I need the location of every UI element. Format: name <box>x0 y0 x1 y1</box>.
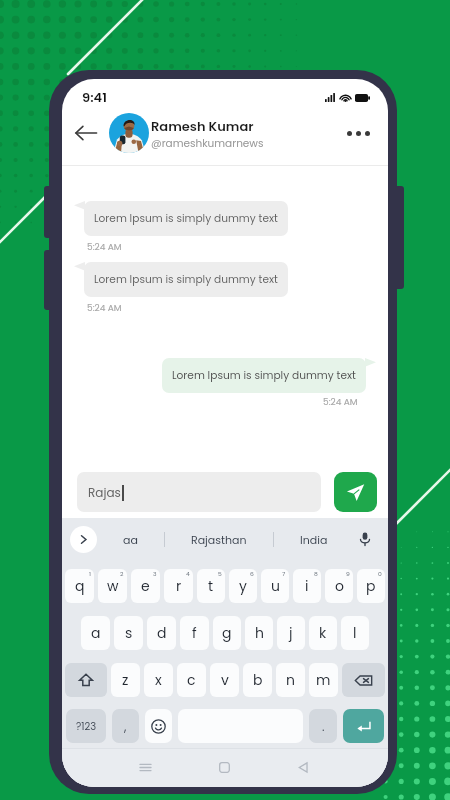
button[interactable]: Voice input <box>354 528 376 550</box>
button[interactable]: Backspace <box>342 663 385 697</box>
button[interactable]: x <box>144 663 173 697</box>
staticText: p <box>366 576 376 596</box>
button[interactable]: t <box>197 569 225 603</box>
staticText: y <box>239 576 247 596</box>
button[interactable]: More options <box>343 118 373 148</box>
staticText: r <box>176 576 182 596</box>
staticText: 9:41 <box>82 88 107 106</box>
staticText: a <box>91 623 101 643</box>
button[interactable]: f <box>180 616 209 650</box>
staticText: d <box>157 623 167 643</box>
button[interactable]: u <box>261 569 289 603</box>
button[interactable]: g <box>213 616 241 650</box>
staticText: 4 <box>186 570 190 578</box>
staticText: n <box>286 670 295 690</box>
staticText: Lorem Ipsum is simply dummy text <box>172 368 356 383</box>
button[interactable]: Shift <box>65 663 107 697</box>
staticText: e <box>141 576 150 596</box>
staticText: @rameshkumarnews <box>151 136 264 151</box>
button[interactable]: e <box>131 569 160 603</box>
button[interactable]: ?123 <box>66 709 106 743</box>
staticText: h <box>255 623 264 643</box>
button[interactable]: h <box>245 616 273 650</box>
staticText: u <box>271 576 280 596</box>
staticText: 0 <box>378 570 382 578</box>
staticText: 5:24 AM <box>87 241 122 254</box>
staticText: w <box>107 576 119 596</box>
button[interactable]: Back <box>71 118 101 148</box>
staticText: k <box>319 623 327 643</box>
button[interactable]: c <box>177 663 206 697</box>
staticText: Ramesh Kumar <box>151 117 254 135</box>
button[interactable]: i <box>293 569 321 603</box>
staticText: Rajasthan <box>191 532 247 547</box>
button[interactable]: Lorem Ipsum is simply dummy text <box>84 262 288 297</box>
button[interactable]: w <box>98 569 127 603</box>
button[interactable]: a <box>81 616 110 650</box>
staticText: Lorem Ipsum is simply dummy text <box>94 211 278 226</box>
staticText: g <box>222 623 232 643</box>
button[interactable]: , <box>112 709 139 743</box>
button[interactable]: n <box>276 663 305 697</box>
button[interactable]: y <box>229 569 257 603</box>
staticText: f <box>192 623 197 643</box>
button[interactable]: aa <box>117 528 144 551</box>
staticText: v <box>221 670 229 690</box>
staticText: 8 <box>314 570 318 578</box>
button[interactable]: India <box>294 528 334 551</box>
staticText: ?123 <box>76 719 97 733</box>
button[interactable]: j <box>277 616 305 650</box>
button[interactable]: Expand suggestions <box>70 526 97 553</box>
staticText: x <box>155 670 162 690</box>
staticText: Lorem Ipsum is simply dummy text <box>94 272 278 287</box>
button[interactable]: z <box>111 663 140 697</box>
staticText: aa <box>123 532 138 547</box>
staticText: India <box>300 532 328 547</box>
staticText: l <box>353 623 357 643</box>
button[interactable]: q <box>65 569 94 603</box>
button[interactable]: r <box>164 569 193 603</box>
staticText: s <box>125 623 133 643</box>
staticText: j <box>289 623 293 643</box>
button[interactable]: d <box>147 616 176 650</box>
button[interactable]: Rajasthan <box>185 528 253 551</box>
staticText: 9 <box>346 570 350 578</box>
button[interactable]: m <box>309 663 338 697</box>
button[interactable]: s <box>114 616 143 650</box>
staticText: c <box>187 670 196 690</box>
button[interactable]: b <box>243 663 272 697</box>
staticText: Rajas <box>88 484 121 501</box>
staticText: t <box>208 576 214 596</box>
staticText: 5 <box>218 570 222 578</box>
staticText: i <box>305 576 309 596</box>
staticText: b <box>253 670 263 690</box>
button[interactable]: Enter <box>343 709 384 743</box>
button[interactable]: k <box>309 616 337 650</box>
staticText: o <box>335 576 344 596</box>
button[interactable]: Emoji <box>145 709 172 743</box>
staticText: z <box>122 670 129 690</box>
staticText: 7 <box>282 570 286 578</box>
staticText: , <box>124 718 127 735</box>
button[interactable]: Home <box>211 754 237 780</box>
button[interactable]: l <box>341 616 369 650</box>
button[interactable]: Send <box>334 472 377 512</box>
button[interactable]: Rajas <box>77 472 321 512</box>
staticText: 5:24 AM <box>87 302 122 315</box>
staticText: 3 <box>153 570 157 578</box>
staticText: 5:24 AM <box>323 396 358 409</box>
button[interactable]: Lorem Ipsum is simply dummy text <box>84 201 288 236</box>
staticText: 2 <box>120 570 124 578</box>
staticText: . <box>322 718 325 735</box>
button[interactable]: Back <box>290 754 316 780</box>
staticText: 6 <box>250 570 254 578</box>
staticText: q <box>75 576 85 596</box>
staticText: m <box>316 670 331 690</box>
button[interactable]: o <box>325 569 353 603</box>
button[interactable]: Lorem Ipsum is simply dummy text <box>162 358 366 393</box>
button[interactable]: v <box>210 663 239 697</box>
button[interactable]: . <box>309 709 337 743</box>
button[interactable]: p <box>357 569 385 603</box>
button[interactable]: Recents <box>132 754 158 780</box>
